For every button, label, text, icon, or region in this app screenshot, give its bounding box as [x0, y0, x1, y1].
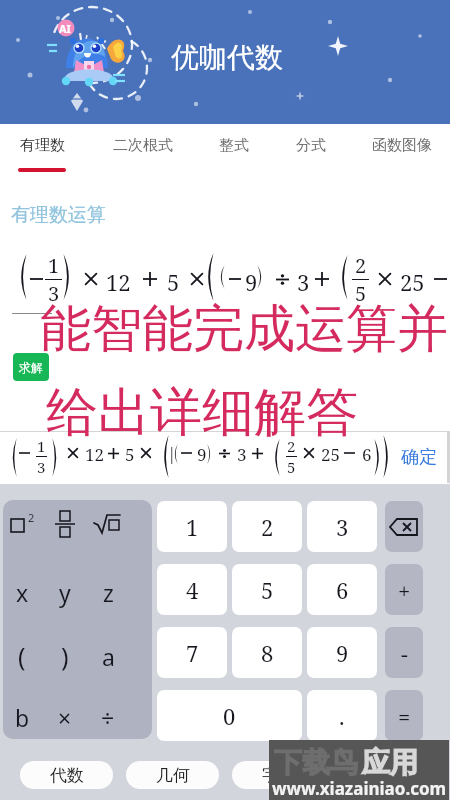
staticText: ×: [58, 702, 72, 733]
button[interactable]: 符号: [338, 761, 431, 789]
staticText: 6: [362, 443, 372, 466]
button[interactable]: 8: [232, 627, 302, 678]
staticText: www.xiazainiao.com: [272, 777, 447, 800]
button[interactable]: -: [385, 627, 423, 678]
staticText: 1: [186, 512, 199, 542]
staticText: ): [61, 639, 69, 673]
staticText: 9: [336, 638, 349, 668]
staticText: 有理数: [20, 136, 65, 155]
button[interactable]: 5: [232, 564, 302, 615]
staticText: x: [16, 577, 29, 608]
button[interactable]: 有理数: [14, 136, 70, 172]
staticText: 5: [261, 575, 274, 605]
staticText: 8: [261, 638, 274, 668]
staticText: .: [339, 701, 345, 731]
button[interactable]: 7: [157, 627, 227, 678]
staticText: 7: [186, 638, 199, 668]
staticText: 给出详细解答: [46, 380, 358, 446]
staticText: 2: [287, 436, 296, 456]
button[interactable]: x: [3, 570, 44, 614]
staticText: 2: [355, 252, 367, 279]
staticText: ÷: [101, 702, 115, 733]
button[interactable]: [86, 502, 130, 546]
staticText: (: [18, 639, 26, 673]
staticText: 符号: [368, 765, 402, 786]
button[interactable]: a: [86, 634, 130, 678]
staticText: 代数: [50, 765, 84, 786]
button[interactable]: =: [385, 690, 423, 741]
button[interactable]: 分式: [292, 136, 330, 172]
button[interactable]: 9: [307, 627, 377, 678]
button[interactable]: .: [307, 690, 377, 741]
staticText: 3: [48, 280, 60, 304]
staticText: 25: [400, 267, 425, 297]
button[interactable]: 字母: [232, 761, 325, 789]
button[interactable]: 3: [307, 501, 377, 552]
button[interactable]: 函数图像: [368, 136, 436, 172]
staticText: 整式: [219, 136, 249, 155]
button[interactable]: 二次根式: [109, 136, 177, 172]
staticText: 1: [37, 436, 46, 456]
button[interactable]: 几何: [126, 761, 219, 789]
staticText: 9: [197, 443, 207, 466]
staticText: +: [398, 575, 411, 605]
staticText: 字母: [262, 765, 296, 786]
button[interactable]: 2: [232, 501, 302, 552]
button[interactable]: [43, 502, 87, 546]
staticText: 3: [237, 443, 247, 466]
staticText: 3: [37, 457, 46, 477]
staticText: 6: [336, 575, 349, 605]
staticText: 几何: [156, 765, 190, 786]
staticText: 4: [186, 575, 199, 605]
staticText: 2: [28, 510, 35, 525]
button[interactable]: +: [385, 564, 423, 615]
button[interactable]: 代数: [20, 761, 113, 789]
staticText: 二次根式: [113, 136, 173, 155]
button[interactable]: ): [43, 634, 87, 678]
staticText: -: [401, 638, 408, 668]
staticText: 3: [336, 512, 349, 542]
staticText: 5: [167, 267, 180, 297]
button[interactable]: y: [43, 570, 87, 614]
staticText: 能智能完成运算并: [40, 297, 448, 361]
button[interactable]: 6: [307, 564, 377, 615]
staticText: b: [15, 702, 30, 733]
staticText: 25: [321, 443, 341, 466]
staticText: 确定: [401, 446, 437, 469]
staticText: y: [59, 577, 71, 608]
staticText: =: [398, 701, 411, 731]
button[interactable]: (: [3, 634, 44, 678]
staticText: 求解: [19, 360, 43, 375]
button[interactable]: 整式: [215, 136, 253, 172]
staticText: 1: [48, 252, 60, 279]
staticText: 优咖代数: [171, 40, 283, 75]
staticText: 3: [297, 267, 310, 297]
staticText: 12: [106, 267, 131, 297]
staticText: AI: [59, 21, 71, 36]
button[interactable]: Backspace: [385, 501, 423, 552]
button[interactable]: 0: [157, 690, 302, 741]
staticText: 下载鸟: [274, 745, 358, 780]
staticText: z: [103, 577, 114, 608]
button[interactable]: 确定: [396, 443, 442, 472]
staticText: 分式: [296, 136, 326, 155]
staticText: 函数图像: [372, 136, 432, 155]
button[interactable]: ×: [43, 695, 87, 739]
staticText: 12: [85, 443, 105, 466]
button[interactable]: 4: [157, 564, 227, 615]
button[interactable]: b: [3, 695, 44, 739]
button[interactable]: ÷: [86, 695, 130, 739]
button[interactable]: z: [86, 570, 130, 614]
staticText: |: [167, 442, 177, 465]
staticText: 5: [355, 280, 367, 304]
staticText: a: [102, 641, 115, 672]
staticText: 2: [261, 512, 274, 542]
staticText: 5: [287, 457, 296, 477]
button[interactable]: 2: [3, 502, 44, 546]
staticText: 应用: [362, 745, 418, 780]
button[interactable]: 求解: [13, 353, 49, 381]
button[interactable]: 1: [157, 501, 227, 552]
staticText: 0: [223, 701, 236, 731]
staticText: 有理数运算: [11, 203, 106, 227]
staticText: 9: [245, 267, 258, 297]
